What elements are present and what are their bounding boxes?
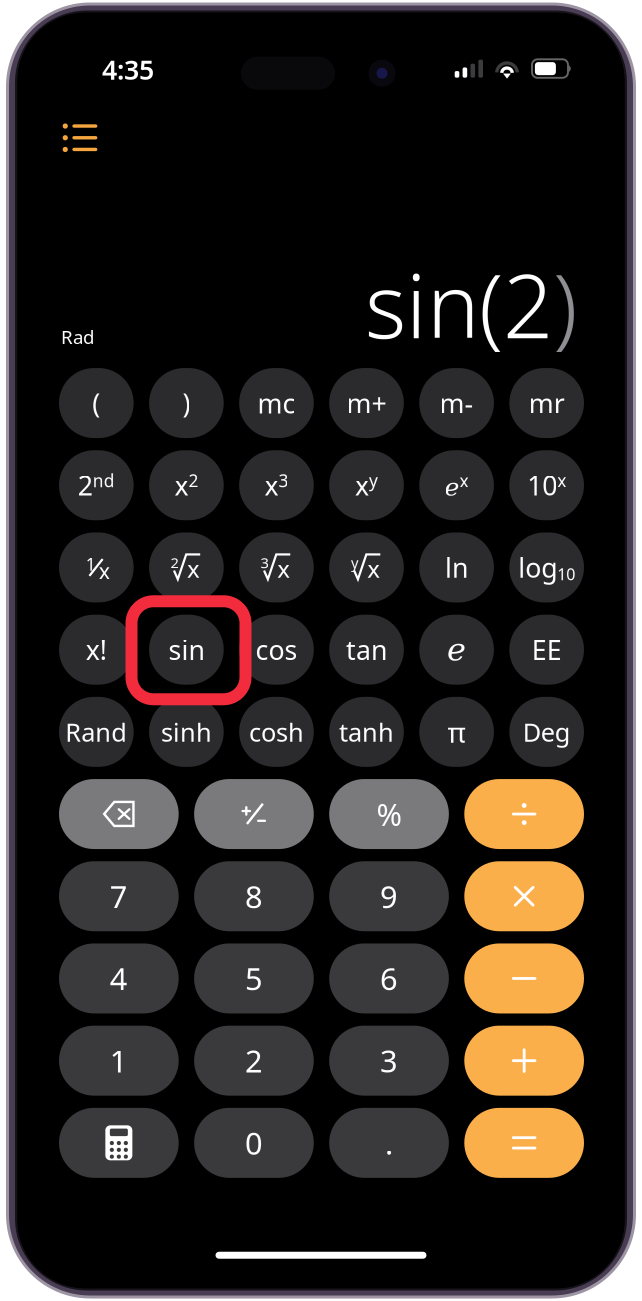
button[interactable]: sinh xyxy=(149,697,224,767)
staticText: 7 xyxy=(110,876,128,917)
button[interactable]: 7 xyxy=(59,861,179,931)
button[interactable]: 2nd xyxy=(59,450,134,520)
button[interactable]: Minus xyxy=(464,943,584,1013)
button[interactable]: % xyxy=(329,779,449,849)
button[interactable]: Multiply xyxy=(464,861,584,931)
staticText: 9 xyxy=(380,876,398,917)
button[interactable]: x to the power y xyxy=(329,450,404,520)
staticText: x3 xyxy=(264,467,288,503)
button[interactable]: Plus Minus xyxy=(194,779,314,849)
staticText: x xyxy=(99,557,110,585)
staticText: m- xyxy=(440,385,474,421)
staticText: tanh xyxy=(339,715,394,749)
button[interactable]: square root of x xyxy=(149,532,224,602)
button[interactable]: e xyxy=(419,615,494,685)
staticText: xy xyxy=(355,467,378,503)
button[interactable]: log base 10 xyxy=(509,532,584,602)
staticText: y xyxy=(351,553,358,572)
button[interactable]: tanh xyxy=(329,697,404,767)
staticText: Rand xyxy=(65,715,127,749)
button[interactable]: one over x xyxy=(59,532,134,602)
staticText: sin(2 xyxy=(365,246,553,363)
staticText: 0 xyxy=(245,1122,263,1163)
staticText: 6 xyxy=(380,958,398,999)
button[interactable]: 10 to the x xyxy=(509,450,584,520)
button[interactable]: e to the x xyxy=(419,450,494,520)
staticText: ) xyxy=(553,246,577,363)
staticText: Deg xyxy=(523,715,571,749)
button[interactable]: ln xyxy=(419,532,494,602)
staticText: ) xyxy=(182,385,190,421)
staticText: log10 xyxy=(518,550,575,585)
staticText: e xyxy=(447,631,466,668)
button[interactable]: 6 xyxy=(329,943,449,1013)
button[interactable]: 4 xyxy=(59,943,179,1013)
button[interactable]: cos xyxy=(239,615,314,685)
button[interactable]: ) xyxy=(149,368,224,438)
button[interactable]: mc xyxy=(239,368,314,438)
staticText: 4 xyxy=(110,958,128,999)
button[interactable]: 2 xyxy=(194,1026,314,1096)
button[interactable]: Basic calculator xyxy=(59,1108,179,1178)
button[interactable]: Divide xyxy=(464,779,584,849)
staticText: mr xyxy=(529,385,565,421)
button[interactable]: Equals xyxy=(464,1108,584,1178)
staticText: ( xyxy=(92,385,100,421)
staticText: tan xyxy=(346,632,387,667)
staticText: 5 xyxy=(245,958,263,999)
button[interactable]: sin xyxy=(149,615,224,685)
button[interactable]: cosh xyxy=(239,697,314,767)
staticText: 2 xyxy=(170,553,178,572)
button[interactable]: Deg xyxy=(509,697,584,767)
staticText: x xyxy=(277,552,290,584)
staticText: EE xyxy=(532,632,562,667)
staticText: ex xyxy=(445,469,469,501)
button[interactable]: π xyxy=(419,697,494,767)
staticText: x xyxy=(367,552,380,584)
button[interactable]: x cubed xyxy=(239,450,314,520)
button[interactable]: 1 xyxy=(59,1026,179,1096)
staticText: ln xyxy=(445,550,468,585)
button[interactable]: History xyxy=(54,115,106,161)
staticText: 3 xyxy=(380,1040,398,1081)
button[interactable]: 0 xyxy=(194,1108,314,1178)
button[interactable]: mr xyxy=(509,368,584,438)
staticText: 4:35 xyxy=(102,52,154,87)
button[interactable]: y root of x xyxy=(329,532,404,602)
staticText: x2 xyxy=(174,467,198,503)
staticText: cos xyxy=(255,632,297,667)
staticText: 1 xyxy=(110,1040,128,1081)
staticText: sinh xyxy=(161,715,212,749)
staticText: 1 xyxy=(86,552,96,575)
button[interactable]: ( xyxy=(59,368,134,438)
button[interactable]: Rand xyxy=(59,697,134,767)
button[interactable]: . xyxy=(329,1108,449,1178)
staticText: 3 xyxy=(260,553,268,572)
button[interactable]: m- xyxy=(419,368,494,438)
staticText: 2 xyxy=(245,1040,263,1081)
button[interactable]: EE xyxy=(509,615,584,685)
staticText: mc xyxy=(257,385,295,421)
staticText: x xyxy=(187,552,200,584)
button[interactable]: Plus xyxy=(464,1026,584,1096)
staticText: . xyxy=(385,1122,393,1163)
button[interactable]: 5 xyxy=(194,943,314,1013)
button[interactable]: cube root of x xyxy=(239,532,314,602)
staticText: 10x xyxy=(527,467,566,503)
button[interactable]: tan xyxy=(329,615,404,685)
button[interactable]: x! xyxy=(59,615,134,685)
staticText: Rad xyxy=(61,324,94,349)
staticText: % xyxy=(377,794,402,834)
staticText: π xyxy=(448,713,466,750)
button[interactable]: m+ xyxy=(329,368,404,438)
staticText: 8 xyxy=(245,876,263,917)
button[interactable]: Delete xyxy=(59,779,179,849)
button[interactable]: 8 xyxy=(194,861,314,931)
staticText: cosh xyxy=(249,715,304,749)
button[interactable]: x squared xyxy=(149,450,224,520)
button[interactable]: 3 xyxy=(329,1026,449,1096)
staticText: x! xyxy=(86,632,107,667)
staticText: m+ xyxy=(346,385,386,421)
button[interactable]: 9 xyxy=(329,861,449,931)
staticText: sin xyxy=(168,632,204,667)
